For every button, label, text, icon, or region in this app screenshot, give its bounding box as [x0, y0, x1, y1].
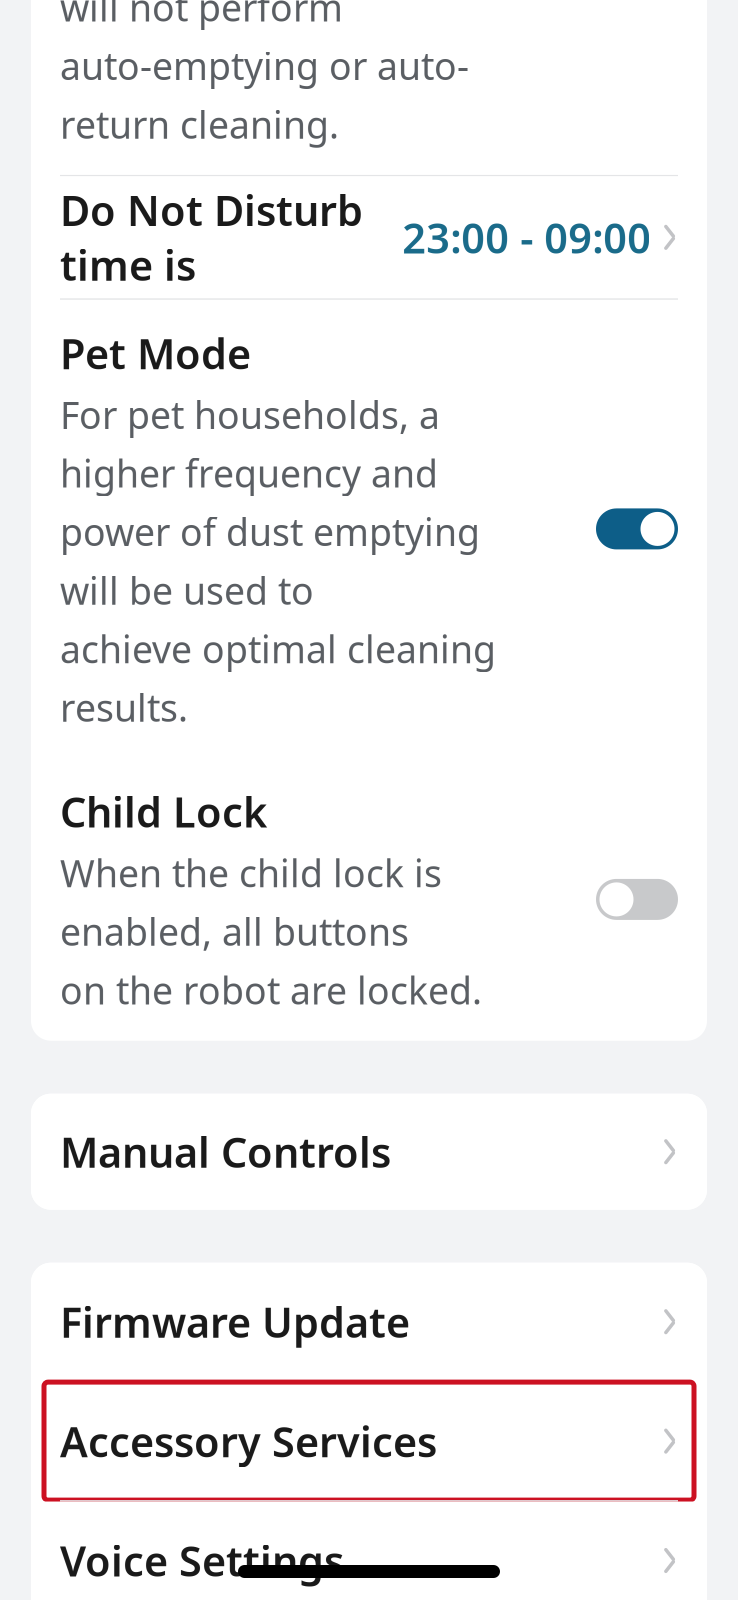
button[interactable]: Accessory Services [31, 1382, 707, 1500]
staticText: When the child lock is enabled, all butt… [60, 848, 482, 1015]
staticText: Accessory Services [60, 1414, 437, 1469]
button[interactable]: Voice Settings [31, 1501, 707, 1600]
button[interactable]: Firmware Update [31, 1263, 707, 1381]
staticText: When Do Not Disturb mode is in enabled, … [60, 0, 529, 149]
staticText: Do Not Disturb time is [60, 182, 363, 292]
staticText: Manual Controls [60, 1124, 391, 1179]
staticText: Child Lock [60, 784, 267, 839]
staticText: 23:00 - 09:00 [402, 210, 651, 265]
staticText: Pet Mode [60, 326, 251, 381]
staticText: Firmware Update [60, 1294, 410, 1349]
staticText: For pet households, a higher frequency a… [60, 390, 496, 732]
button[interactable]: Do Not Disturb time is [31, 176, 707, 298]
button[interactable]: Manual Controls [31, 1094, 707, 1210]
staticText: Voice Settings [60, 1533, 344, 1588]
